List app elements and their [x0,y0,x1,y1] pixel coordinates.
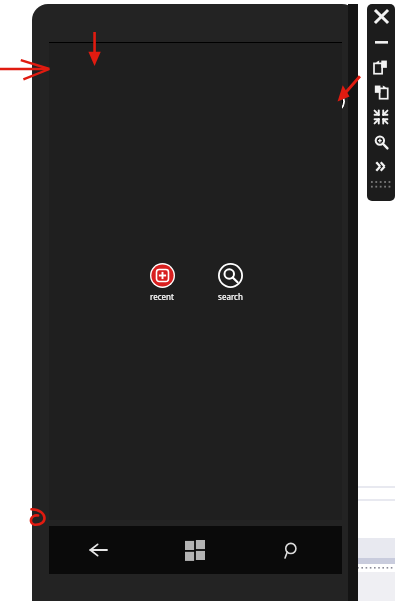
button[interactable]: More [367,154,395,179]
other: Search [218,263,243,288]
button[interactable]: Recent [136,258,188,302]
button[interactable]: Zoom [367,129,395,154]
staticText: Supplier Search [57,56,213,86]
button[interactable]: Rotate right [367,79,395,104]
button[interactable]: Close [367,4,395,29]
button[interactable]: Search [204,258,256,302]
button[interactable]: Search [52,90,345,113]
button[interactable]: Back [49,526,146,574]
staticText: search [218,291,243,302]
staticText: recent [150,291,174,302]
button[interactable]: Fit to screen [367,104,395,129]
button[interactable]: Rotate left [367,54,395,79]
other: Recent [150,263,175,288]
button[interactable]: Home [146,526,243,574]
button[interactable]: Search [243,526,340,574]
button[interactable]: Minimize [367,29,395,54]
